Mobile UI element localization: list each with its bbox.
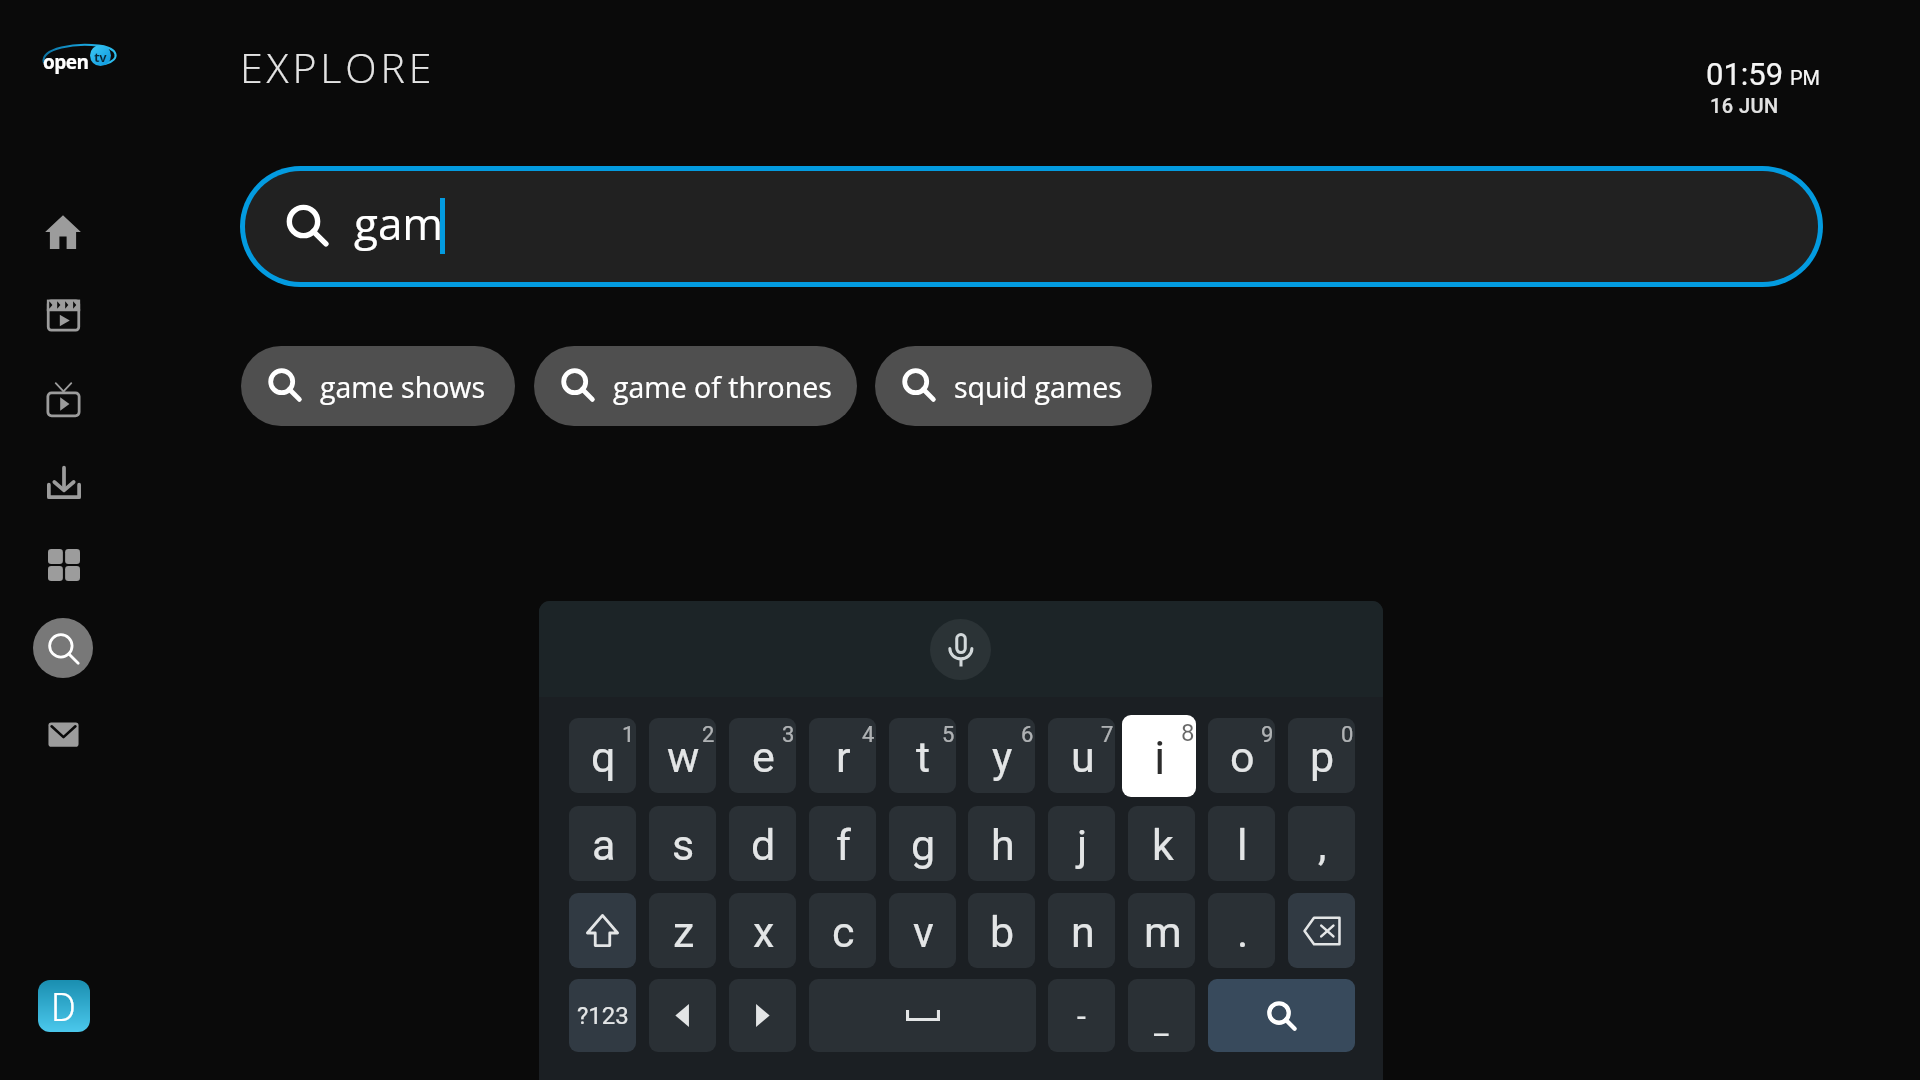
button[interactable]: g bbox=[889, 806, 956, 881]
button[interactable]: e bbox=[729, 718, 796, 793]
staticText: n bbox=[1071, 907, 1095, 957]
button[interactable]: v bbox=[889, 893, 956, 968]
button[interactable]: o bbox=[1208, 718, 1275, 793]
button[interactable]: t bbox=[889, 718, 956, 793]
button[interactable]: gam bbox=[245, 171, 1818, 282]
staticText: game shows bbox=[320, 368, 485, 407]
button[interactable]: w bbox=[649, 718, 716, 793]
staticText: z bbox=[673, 907, 695, 957]
staticText: . bbox=[1237, 907, 1249, 957]
staticText: ?123 bbox=[577, 1002, 629, 1030]
button[interactable]: Downloads bbox=[47, 465, 81, 499]
button[interactable]: . bbox=[1208, 893, 1275, 968]
staticText: tv bbox=[94, 48, 107, 66]
staticText: b bbox=[990, 907, 1015, 957]
button[interactable]: Profile bbox=[38, 980, 90, 1032]
staticText: h bbox=[991, 820, 1015, 870]
staticText: 4 bbox=[862, 722, 875, 748]
staticText: c bbox=[832, 907, 855, 957]
staticText: 1 bbox=[622, 722, 635, 748]
button[interactable]: Shift bbox=[569, 893, 636, 968]
button[interactable]: game of thrones bbox=[534, 346, 857, 426]
staticText: 16 JUN bbox=[1710, 94, 1779, 117]
button[interactable]: openTV home bbox=[41, 42, 119, 70]
button[interactable]: i bbox=[1122, 715, 1196, 797]
button[interactable]: , bbox=[1288, 806, 1355, 881]
button[interactable]: Home bbox=[44, 213, 82, 251]
button[interactable]: r bbox=[809, 718, 876, 793]
button[interactable]: z bbox=[649, 893, 716, 968]
staticText: t bbox=[916, 732, 931, 782]
staticText: a bbox=[592, 820, 616, 870]
button[interactable]: c bbox=[809, 893, 876, 968]
button[interactable]: k bbox=[1128, 806, 1195, 881]
button[interactable]: Live TV bbox=[45, 382, 82, 419]
staticText: u bbox=[1071, 732, 1095, 782]
button[interactable]: q bbox=[569, 718, 636, 793]
button[interactable]: Space bbox=[809, 979, 1036, 1052]
button[interactable]: f bbox=[809, 806, 876, 881]
button[interactable]: b bbox=[968, 893, 1035, 968]
button[interactable]: y bbox=[968, 718, 1035, 793]
button[interactable]: n bbox=[1048, 893, 1115, 968]
button[interactable]: Mail bbox=[46, 717, 81, 752]
staticText: g bbox=[911, 820, 936, 870]
staticText: 7 bbox=[1101, 722, 1114, 748]
staticText: PM bbox=[1790, 66, 1821, 89]
staticText: o bbox=[1230, 732, 1255, 782]
staticText: d bbox=[751, 820, 776, 870]
button[interactable]: Search bbox=[33, 618, 93, 678]
button[interactable]: m bbox=[1128, 893, 1195, 968]
staticText: k bbox=[1152, 820, 1174, 870]
button[interactable]: game shows bbox=[241, 346, 515, 426]
button[interactable]: s bbox=[649, 806, 716, 881]
button[interactable]: Voice search bbox=[930, 619, 991, 680]
staticText: v bbox=[913, 907, 934, 957]
staticText: 5 bbox=[942, 722, 955, 748]
staticText: m bbox=[1144, 907, 1182, 957]
button[interactable]: Symbols bbox=[569, 979, 636, 1052]
staticText: q bbox=[591, 732, 616, 782]
staticText: squid games bbox=[954, 368, 1122, 407]
staticText: gam bbox=[354, 193, 444, 253]
button[interactable]: squid games bbox=[875, 346, 1152, 426]
staticText: D bbox=[51, 986, 76, 1031]
staticText: 6 bbox=[1021, 722, 1034, 748]
staticText: 0 bbox=[1341, 722, 1354, 748]
staticText: game of thrones bbox=[613, 368, 832, 407]
staticText: 01:59 bbox=[1706, 56, 1784, 92]
button[interactable]: j bbox=[1048, 806, 1115, 881]
button[interactable]: Apps bbox=[48, 549, 80, 581]
staticText: _ bbox=[1154, 1004, 1169, 1042]
button[interactable]: Hyphen bbox=[1048, 979, 1115, 1052]
staticText: 3 bbox=[782, 722, 795, 748]
staticText: w bbox=[667, 732, 700, 782]
button[interactable]: Move right bbox=[729, 979, 796, 1052]
staticText: 9 bbox=[1261, 722, 1274, 748]
staticText: open bbox=[43, 49, 89, 75]
button[interactable]: p bbox=[1288, 718, 1355, 793]
button[interactable]: x bbox=[729, 893, 796, 968]
staticText: j bbox=[1077, 820, 1088, 870]
button[interactable]: h bbox=[968, 806, 1035, 881]
button[interactable]: Move left bbox=[649, 979, 716, 1052]
staticText: x bbox=[753, 907, 775, 957]
staticText: s bbox=[672, 820, 695, 870]
button[interactable]: l bbox=[1208, 806, 1275, 881]
staticText: f bbox=[836, 820, 851, 870]
staticText: , bbox=[1318, 820, 1327, 870]
button[interactable]: a bbox=[569, 806, 636, 881]
button[interactable]: u bbox=[1048, 718, 1115, 793]
staticText: 2 bbox=[702, 722, 715, 748]
staticText: EXPLORE bbox=[240, 39, 436, 95]
button[interactable]: d bbox=[729, 806, 796, 881]
button[interactable]: Backspace bbox=[1288, 893, 1355, 968]
staticText: i bbox=[1154, 730, 1166, 785]
button[interactable]: Search bbox=[1208, 979, 1355, 1052]
button[interactable]: Underscore bbox=[1128, 979, 1195, 1052]
staticText: p bbox=[1310, 732, 1335, 782]
staticText: 8 bbox=[1181, 719, 1195, 747]
staticText: l bbox=[1237, 820, 1248, 870]
button[interactable]: Movies bbox=[45, 297, 82, 334]
staticText: - bbox=[1077, 997, 1086, 1035]
